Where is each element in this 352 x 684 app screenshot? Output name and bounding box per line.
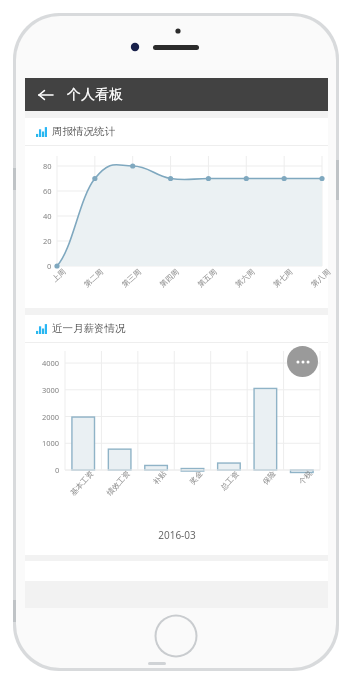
staticText: 2016-03 [158, 528, 196, 542]
button[interactable]: More options [287, 346, 318, 377]
staticText: 近一月薪资情况 [52, 322, 126, 335]
button[interactable]: 周报情况统计 [25, 118, 328, 308]
button[interactable]: Back [33, 82, 59, 108]
staticText: 周报情况统计 [52, 125, 115, 138]
staticText: 个人看板 [67, 86, 123, 104]
button[interactable]: 近一月薪资情况 [25, 315, 328, 555]
